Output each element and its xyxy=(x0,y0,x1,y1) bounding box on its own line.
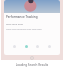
staticText: Performance Tracking xyxy=(6,15,38,19)
button[interactable]: Metric xyxy=(13,45,16,48)
staticText: Real-time data xyxy=(6,22,24,25)
button[interactable]: Metric xyxy=(36,45,39,48)
staticText: Track your progress over time with xyxy=(6,28,42,31)
staticText: Loading Search Results xyxy=(0,63,64,67)
button[interactable]: Metric xyxy=(25,45,28,48)
button[interactable]: Metric xyxy=(48,45,51,48)
